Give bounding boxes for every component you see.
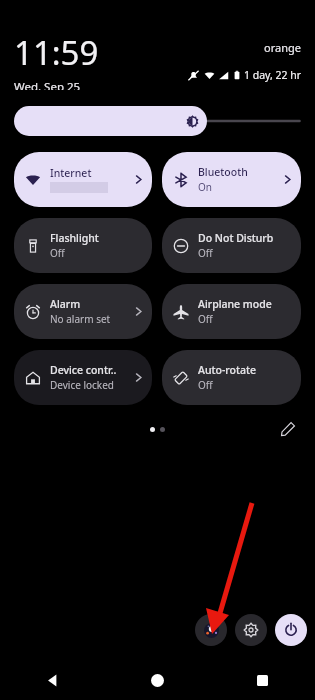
staticText: On — [198, 180, 212, 194]
staticText: Alarm — [50, 297, 81, 311]
button[interactable]: Edit tiles — [277, 418, 299, 440]
staticText: Auto-rotate — [198, 363, 256, 377]
staticText: Device locked — [50, 378, 114, 392]
button[interactable]: User account — [195, 614, 227, 646]
staticText: No alarm set — [50, 312, 111, 326]
staticText: 11:59 — [14, 30, 99, 75]
button[interactable]: Do Not Disturb — [162, 218, 301, 273]
button[interactable]: Device contr.. — [14, 350, 152, 405]
button[interactable]: Auto-rotate — [162, 350, 301, 405]
button[interactable]: Internet — [14, 152, 152, 207]
button[interactable]: Home — [105, 660, 210, 700]
staticText: 1 day, 22 hr — [244, 68, 302, 82]
staticText: Do Not Disturb — [198, 231, 274, 245]
button[interactable]: Flashlight — [14, 218, 152, 273]
staticText: Wed, Sep 25 — [14, 79, 81, 90]
button[interactable]: Back — [0, 660, 105, 700]
staticText: Flashlight — [50, 231, 99, 245]
button[interactable]: Airplane mode — [162, 284, 301, 339]
button[interactable]: Recent apps — [210, 660, 315, 700]
staticText: Bluetooth — [198, 165, 248, 179]
button[interactable]: Alarm — [14, 284, 152, 339]
staticText: Off — [50, 246, 65, 260]
staticText: Internet — [50, 166, 92, 180]
staticText: orange — [264, 40, 301, 55]
staticText: Off — [198, 312, 213, 326]
button[interactable]: Settings — [235, 614, 267, 646]
button[interactable]: Brightness — [14, 106, 301, 136]
staticText: Off — [198, 378, 213, 392]
button[interactable]: Power — [275, 614, 307, 646]
button[interactable]: Bluetooth — [162, 152, 301, 207]
staticText: Device contr.. — [50, 363, 117, 377]
staticText: Airplane mode — [198, 297, 272, 311]
staticText: Off — [198, 246, 213, 260]
